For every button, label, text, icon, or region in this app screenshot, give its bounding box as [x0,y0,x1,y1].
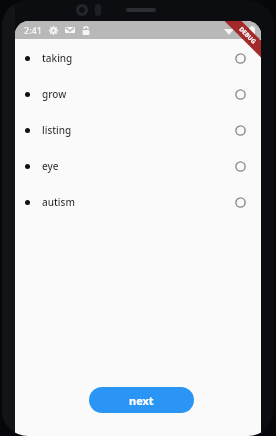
button[interactable]: Select autism [230,192,250,212]
button[interactable]: taking [15,40,261,76]
staticText: listing [42,123,72,137]
staticText: next [129,393,154,408]
staticText: 2:41 [24,24,42,36]
staticText: autism [42,195,75,209]
button[interactable]: grow [15,76,261,112]
button[interactable]: Select eye [230,156,250,176]
button[interactable]: listing [15,112,261,148]
button[interactable]: Select listing [230,120,250,140]
button[interactable]: eye [15,148,261,184]
button[interactable]: next [89,387,194,413]
staticText: DEBUG [237,25,258,46]
staticText: taking [42,51,73,65]
staticText: grow [42,87,67,101]
button[interactable]: Select grow [230,84,250,104]
button[interactable]: Select taking [230,48,250,68]
staticText: eye [42,159,59,173]
button[interactable]: autism [15,184,261,220]
